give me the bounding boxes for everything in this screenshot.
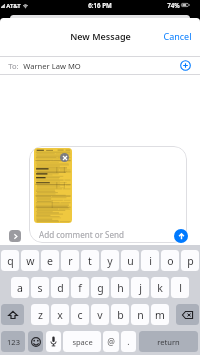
- button[interactable]: period: [121, 331, 136, 352]
- staticText: v: [97, 308, 103, 322]
- button[interactable]: space: [63, 331, 101, 352]
- staticText: a: [17, 281, 23, 295]
- staticText: l: [179, 281, 182, 295]
- button[interactable]: b: [111, 304, 129, 325]
- button[interactable]: c: [71, 304, 89, 325]
- button[interactable]: p: [181, 250, 199, 271]
- staticText: space: [72, 337, 93, 347]
- staticText: e: [47, 254, 53, 268]
- staticText: p: [187, 254, 194, 268]
- staticText: q: [7, 254, 14, 268]
- button[interactable]: m: [151, 304, 169, 325]
- button[interactable]: Cancel: [155, 25, 200, 47]
- staticText: 123: [7, 337, 20, 347]
- staticText: u: [127, 254, 134, 268]
- staticText: Cancel: [163, 30, 192, 42]
- button[interactable]: r: [61, 250, 79, 271]
- button[interactable]: q: [1, 250, 19, 271]
- button[interactable]: n: [131, 304, 149, 325]
- staticText: 74%: [167, 1, 180, 9]
- staticText: w: [26, 254, 35, 268]
- staticText: AT&T: [6, 2, 21, 10]
- button[interactable]: s: [31, 277, 49, 298]
- staticText: d: [57, 281, 64, 295]
- staticText: New Message: [70, 30, 131, 42]
- staticText: f: [78, 281, 82, 295]
- button[interactable]: Emoji: [28, 331, 43, 352]
- button[interactable]: d: [51, 277, 69, 298]
- staticText: c: [77, 308, 83, 322]
- button[interactable]: Remove attachment: [60, 153, 69, 162]
- staticText: z: [38, 308, 43, 322]
- button[interactable]: f: [71, 277, 89, 298]
- staticText: Add comment or Send: [39, 229, 125, 240]
- button[interactable]: g: [91, 277, 109, 298]
- staticText: y: [107, 254, 113, 268]
- button[interactable]: u: [121, 250, 139, 271]
- button[interactable]: t: [81, 250, 99, 271]
- staticText: Warner Law MO: [23, 61, 81, 71]
- staticText: b: [117, 308, 124, 322]
- staticText: r: [68, 254, 73, 268]
- staticText: To:: [8, 61, 19, 71]
- button[interactable]: z: [31, 304, 49, 325]
- staticText: j: [139, 281, 142, 295]
- button[interactable]: l: [171, 277, 189, 298]
- staticText: k: [157, 281, 163, 295]
- button[interactable]: Backspace: [176, 304, 199, 325]
- button[interactable]: x: [51, 304, 69, 325]
- button[interactable]: k: [151, 277, 169, 298]
- button[interactable]: v: [91, 304, 109, 325]
- button[interactable]: return: [139, 331, 198, 352]
- staticText: t: [88, 254, 92, 268]
- button[interactable]: a: [11, 277, 29, 298]
- staticText: o: [167, 254, 174, 268]
- button[interactable]: j: [131, 277, 149, 298]
- button[interactable]: Add contact: [180, 60, 191, 71]
- button[interactable]: at sign: [103, 331, 119, 352]
- staticText: m: [155, 308, 165, 322]
- button[interactable]: y: [101, 250, 119, 271]
- button[interactable]: Shift: [1, 304, 24, 325]
- staticText: x: [57, 308, 63, 322]
- staticText: g: [97, 281, 104, 295]
- button[interactable]: i: [141, 250, 159, 271]
- button[interactable]: h: [111, 277, 129, 298]
- button[interactable]: Dictate: [46, 331, 61, 352]
- button[interactable]: w: [21, 250, 39, 271]
- staticText: .: [127, 336, 130, 348]
- button[interactable]: e: [41, 250, 59, 271]
- button[interactable]: Send: [174, 229, 188, 243]
- staticText: s: [37, 281, 43, 295]
- staticText: @: [107, 336, 115, 348]
- staticText: h: [117, 281, 124, 295]
- button[interactable]: o: [161, 250, 179, 271]
- staticText: 6:16 PM: [88, 1, 112, 9]
- button[interactable]: Numbers: [1, 331, 25, 352]
- button[interactable]: Expand apps: [9, 230, 21, 242]
- staticText: i: [149, 254, 152, 268]
- staticText: return: [157, 337, 180, 347]
- staticText: n: [137, 308, 144, 322]
